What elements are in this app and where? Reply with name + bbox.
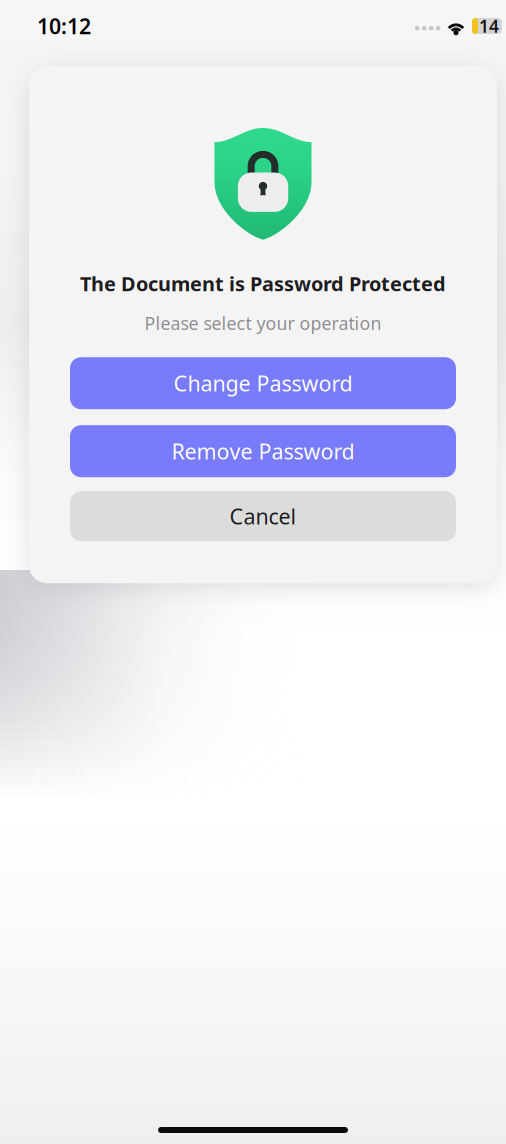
staticText: 14 [479, 14, 499, 37]
button[interactable]: Cancel [70, 491, 456, 541]
staticText: Cancel [229, 502, 296, 531]
button[interactable]: Change Password [70, 357, 456, 409]
staticText: Change Password [173, 369, 352, 398]
staticText: Please select your operation [144, 311, 381, 335]
staticText: Remove Password [171, 437, 354, 466]
staticText: The Document is Password Protected [80, 270, 446, 297]
button[interactable]: Remove Password [70, 425, 456, 477]
staticText: 10:12 [37, 12, 91, 40]
